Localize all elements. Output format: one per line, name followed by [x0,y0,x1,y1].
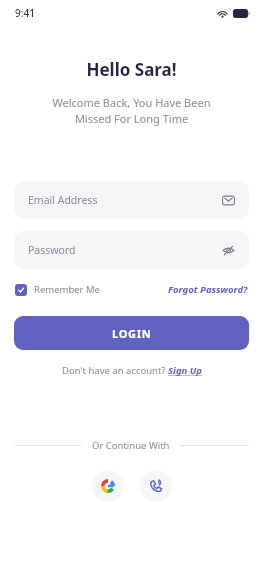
button[interactable]: LOGIN [14,316,249,350]
button[interactable]: Sign Up [168,364,202,377]
staticText: Welcome Back, You Have Been Missed For L… [0,95,263,127]
staticText: Hello Sara! [0,58,263,81]
staticText: Sign Up [168,364,202,377]
staticText: Or Continue With [92,439,170,452]
staticText: Don't have an account? [62,364,168,377]
button[interactable]: Email Address [14,181,249,219]
other: Show password [222,244,235,257]
button[interactable]: Forgot Password? [168,283,248,296]
staticText: LOGIN [112,326,152,341]
button[interactable]: Continue with phone [140,470,172,502]
staticText: 9:41 [15,6,35,20]
staticText: Forgot Password? [168,283,248,296]
staticText: Remember Me [34,283,100,296]
other: Email [222,194,235,207]
button[interactable]: Password [14,231,249,269]
button[interactable]: Continue with Google [92,470,124,502]
staticText: Email Address [28,193,222,207]
button[interactable]: Remember Me [15,283,100,296]
staticText: Password [28,243,222,257]
